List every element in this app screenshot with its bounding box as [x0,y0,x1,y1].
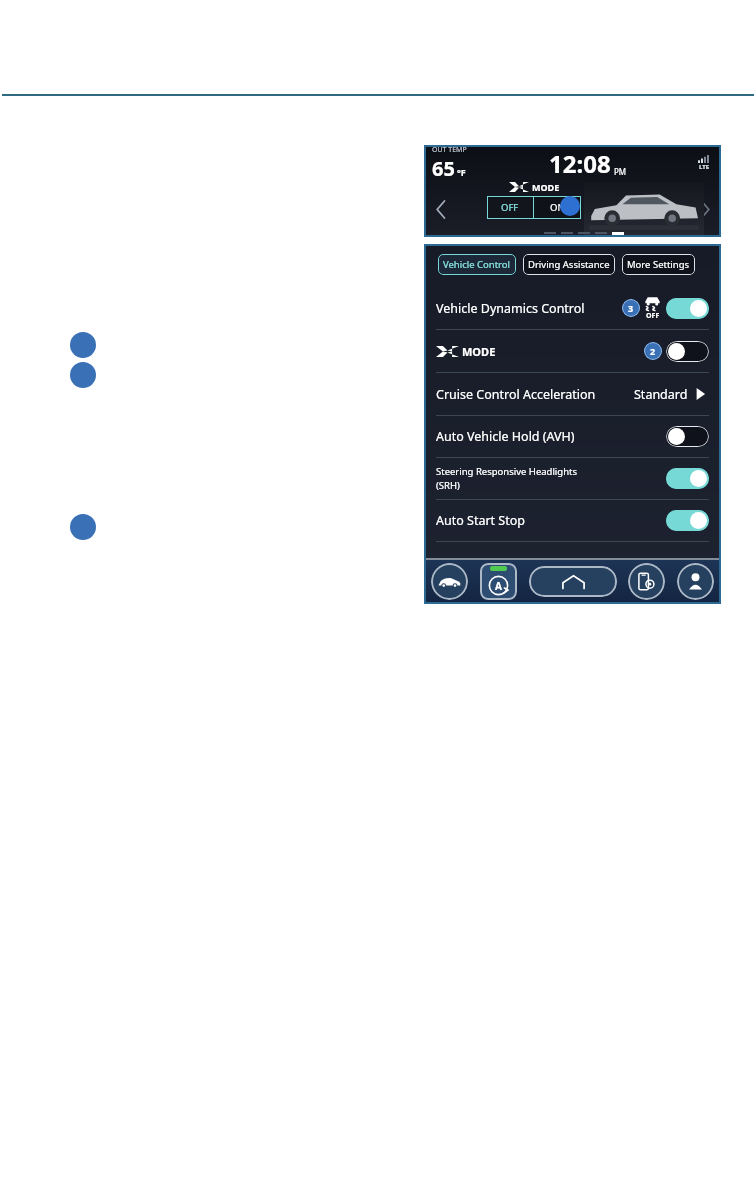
button[interactable]: Callout marker [70,514,96,540]
button[interactable]: Profile [677,563,714,600]
button[interactable]: Off [666,341,709,362]
staticText: OFF [501,201,519,214]
button[interactable]: Vehicle [431,563,468,600]
staticText: OFF [646,311,660,321]
button[interactable]: Home [529,566,617,597]
button[interactable]: Off [666,426,709,447]
staticText: °F [457,166,466,178]
button[interactable]: Steering Responsive Headlights [436,458,709,499]
staticText: ON [550,201,565,214]
staticText: Driving Assistance [528,258,610,271]
button[interactable]: Auto Start Stop [436,500,709,541]
button[interactable]: MODE [436,330,709,372]
button[interactable]: Device settings [628,563,665,600]
staticText: Cruise Control Acceleration [436,386,596,403]
button[interactable]: Vehicle Control [438,254,516,275]
button[interactable]: ON [534,196,581,219]
button[interactable]: More Settings [622,254,695,275]
staticText: Auto Start Stop [436,512,525,529]
button[interactable]: On [666,298,709,319]
staticText: 12:08 [549,147,611,180]
staticText: 2 [650,345,656,357]
button[interactable]: OFF [487,196,533,219]
button[interactable]: Vehicle Dynamics Control [436,287,709,329]
staticText: PM [614,166,627,177]
staticText: Standard [634,386,688,403]
staticText: MODE [462,344,496,359]
button[interactable]: Driving Assistance [523,254,615,275]
staticText: 65 [432,155,455,181]
button[interactable]: Callout marker [70,362,96,388]
staticText: Vehicle Control [443,258,511,271]
staticText: A [495,579,502,593]
staticText: 3 [628,302,634,314]
button[interactable]: Previous [429,197,453,221]
button[interactable]: On [666,468,709,489]
staticText: (SRH) [436,479,460,492]
staticText: More Settings [627,258,690,271]
button[interactable]: Callout marker [70,332,96,358]
button[interactable]: Auto Vehicle Hold (AVH) [436,416,709,457]
button[interactable]: Auto start stop [480,563,517,600]
button[interactable]: Cruise Control Acceleration [436,373,709,415]
other: VDC OFF [644,295,661,321]
staticText: LTE [699,163,710,171]
button[interactable]: Next [693,197,717,221]
staticText: OUT TEMP [432,145,467,155]
staticText: Steering Responsive Headlights [436,465,578,478]
button[interactable]: On [666,510,709,531]
staticText: Vehicle Dynamics Control [436,300,585,317]
staticText: MODE [532,181,560,193]
staticText: Auto Vehicle Hold (AVH) [436,428,575,445]
